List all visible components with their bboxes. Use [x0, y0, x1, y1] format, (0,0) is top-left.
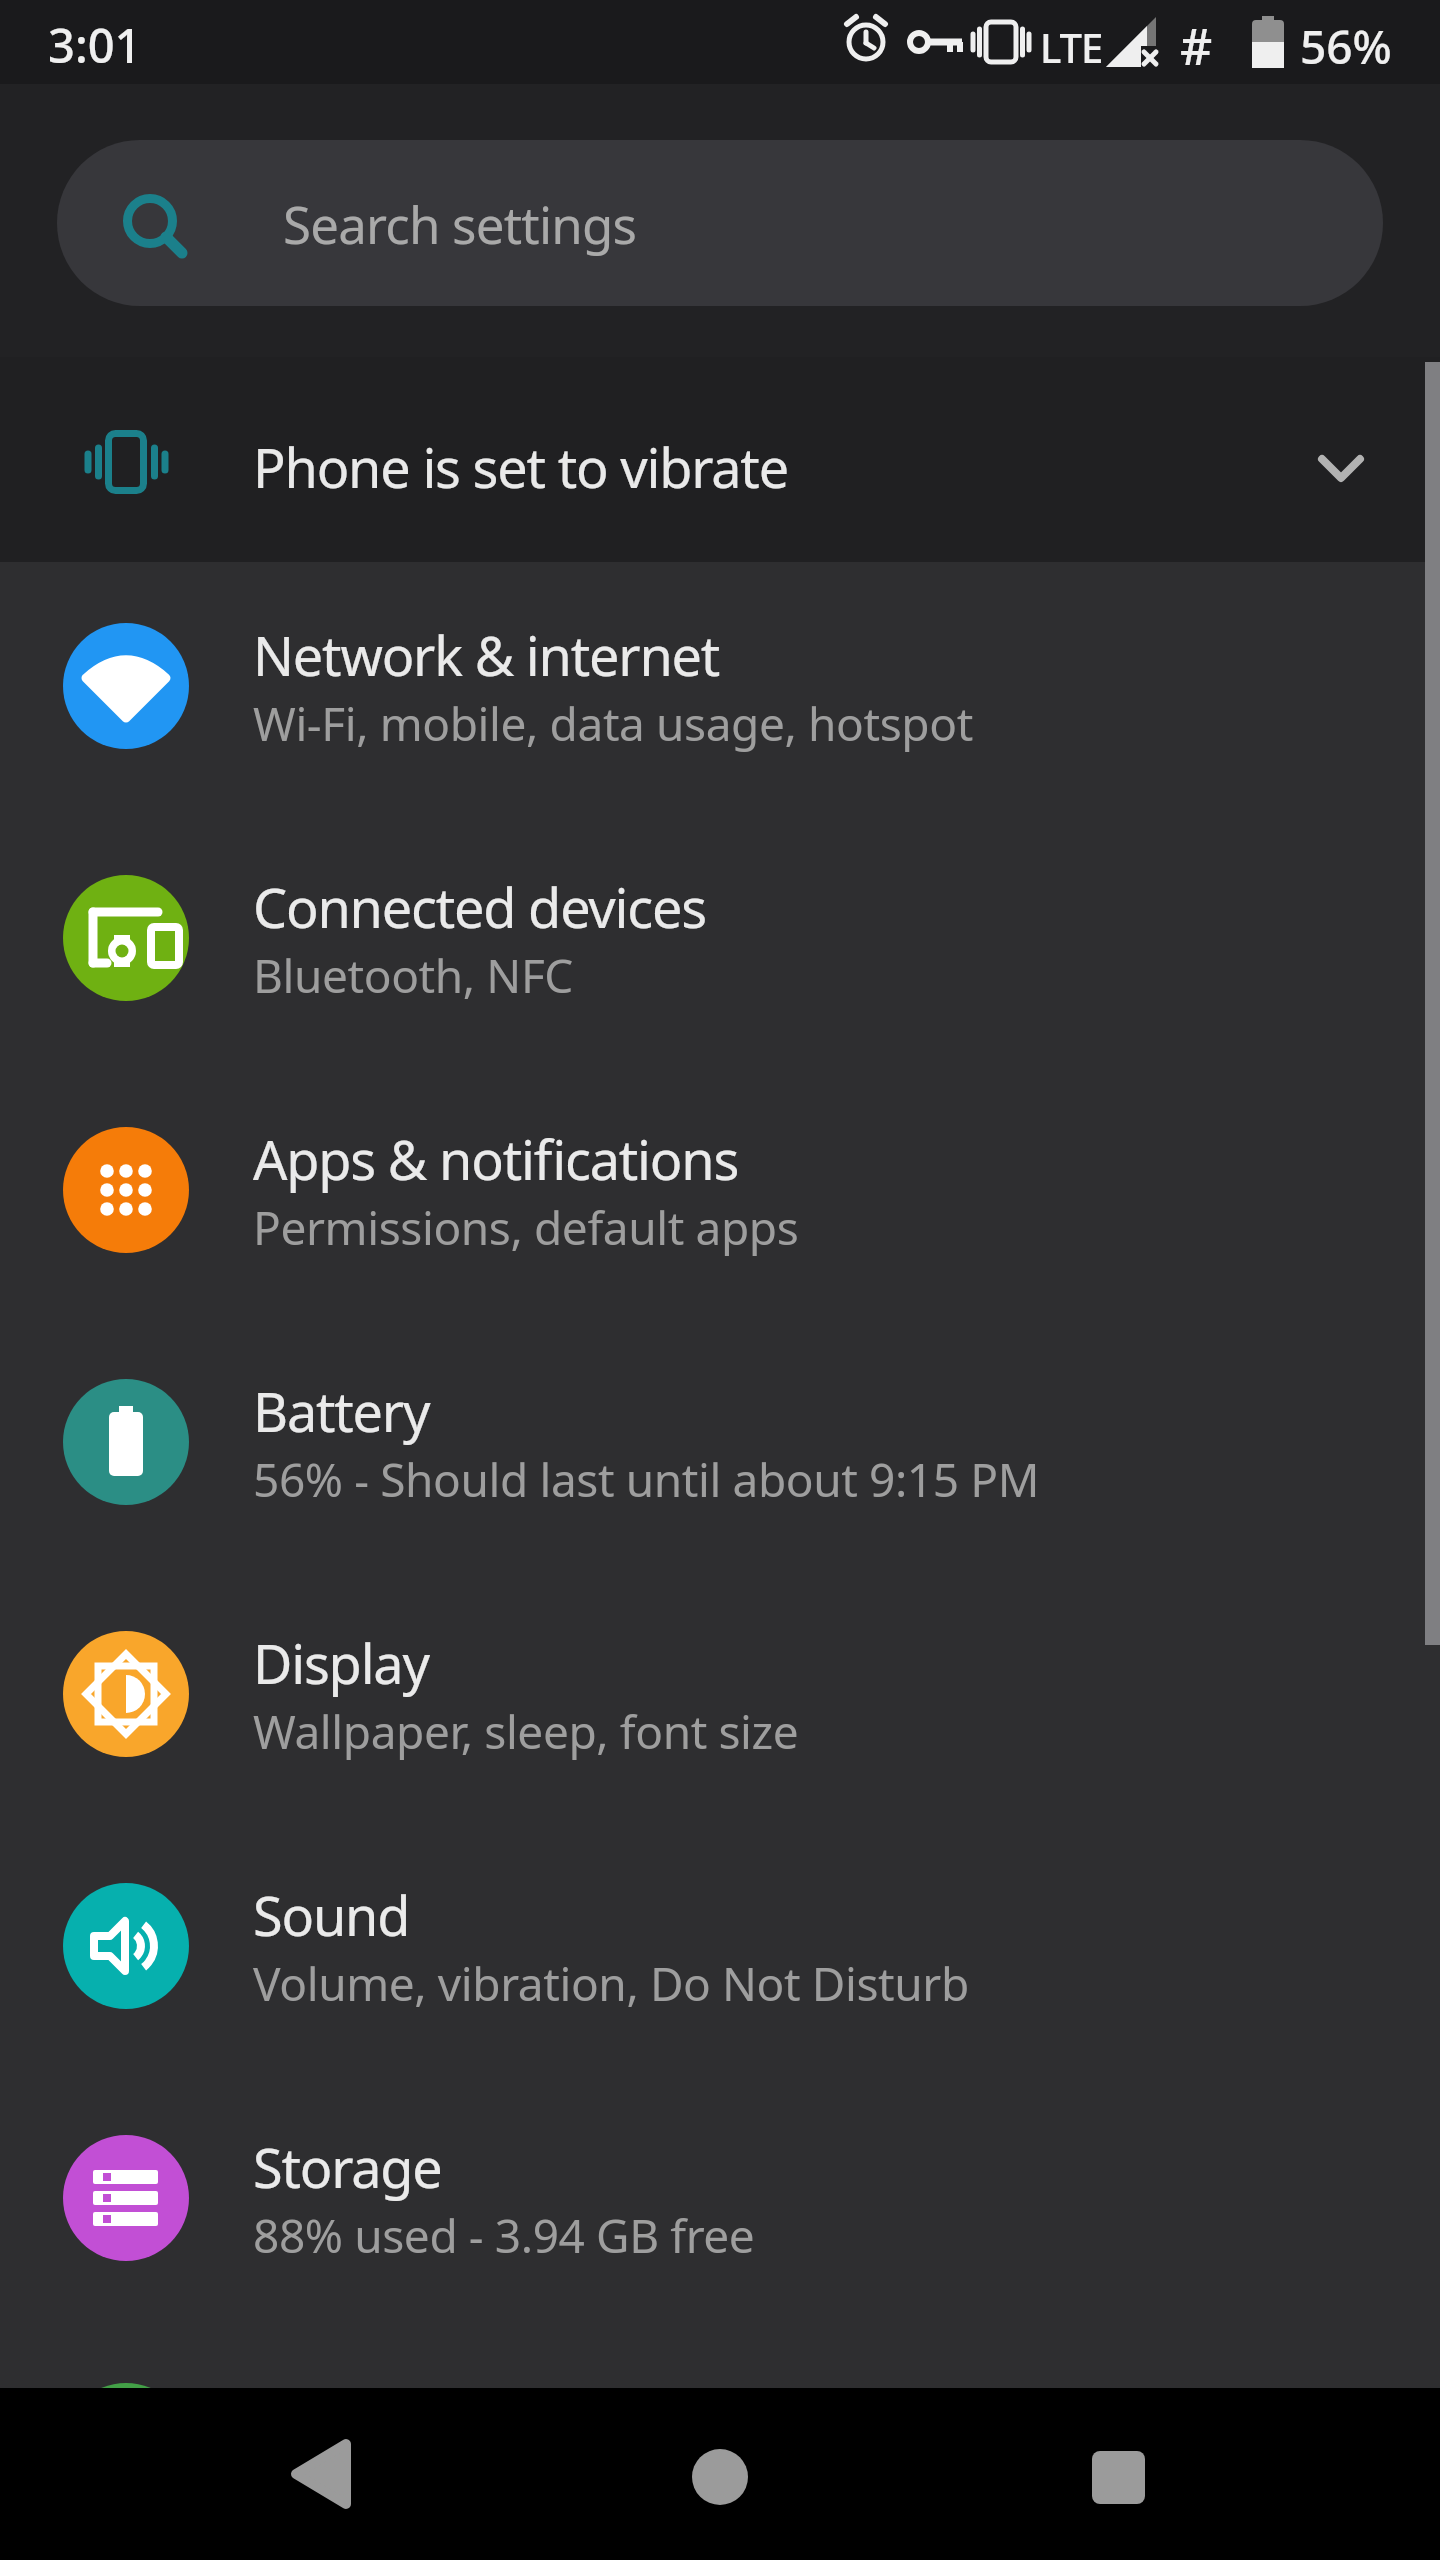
staticText: 56% - Should last until about 9:15 PM — [253, 1448, 1039, 1511]
staticText: Battery — [253, 1374, 430, 1448]
staticText: Apps & notifications — [253, 1122, 739, 1196]
staticText: Permissions, default apps — [253, 1196, 799, 1259]
staticText: # — [1180, 12, 1213, 80]
button[interactable]: Network & internet — [0, 560, 1440, 812]
button[interactable]: Storage — [0, 2072, 1440, 2324]
button[interactable]: Display — [0, 1568, 1440, 1820]
staticText: Display — [253, 1626, 429, 1700]
staticText: Storage — [253, 2130, 442, 2204]
staticText: Search settings — [283, 189, 637, 258]
staticText: LTE — [1040, 20, 1103, 74]
button[interactable] — [660, 2417, 780, 2531]
button[interactable]: Search settings — [57, 140, 1383, 306]
staticText: 56% — [1300, 15, 1392, 78]
staticText: 88% used - 3.94 GB free — [253, 2204, 755, 2267]
button[interactable]: Security & location — [0, 2320, 1440, 2560]
staticText: Network & internet — [253, 618, 720, 692]
button[interactable] — [1058, 2417, 1178, 2531]
staticText: Sound — [253, 1878, 410, 1952]
button[interactable]: Sound — [0, 1820, 1440, 2072]
staticText: Phone is set to vibrate — [253, 430, 788, 504]
button[interactable]: Apps & notifications — [0, 1064, 1440, 1316]
staticText: Wi-Fi, mobile, data usage, hotspot — [253, 692, 973, 755]
button[interactable]: Phone is set to vibrate — [0, 357, 1440, 562]
button[interactable]: Battery — [0, 1316, 1440, 1568]
staticText: Volume, vibration, Do Not Disturb — [253, 1952, 969, 2015]
staticText: Screen lock, fingerprint — [253, 2452, 746, 2515]
staticText: Wallpaper, sleep, font size — [253, 1700, 799, 1763]
staticText: Bluetooth, NFC — [253, 944, 574, 1007]
button[interactable] — [258, 2417, 378, 2531]
staticText: Security & location — [253, 2378, 703, 2452]
staticText: Connected devices — [253, 870, 706, 944]
staticText: 3:01 — [48, 13, 142, 77]
button[interactable]: Connected devices — [0, 812, 1440, 1064]
